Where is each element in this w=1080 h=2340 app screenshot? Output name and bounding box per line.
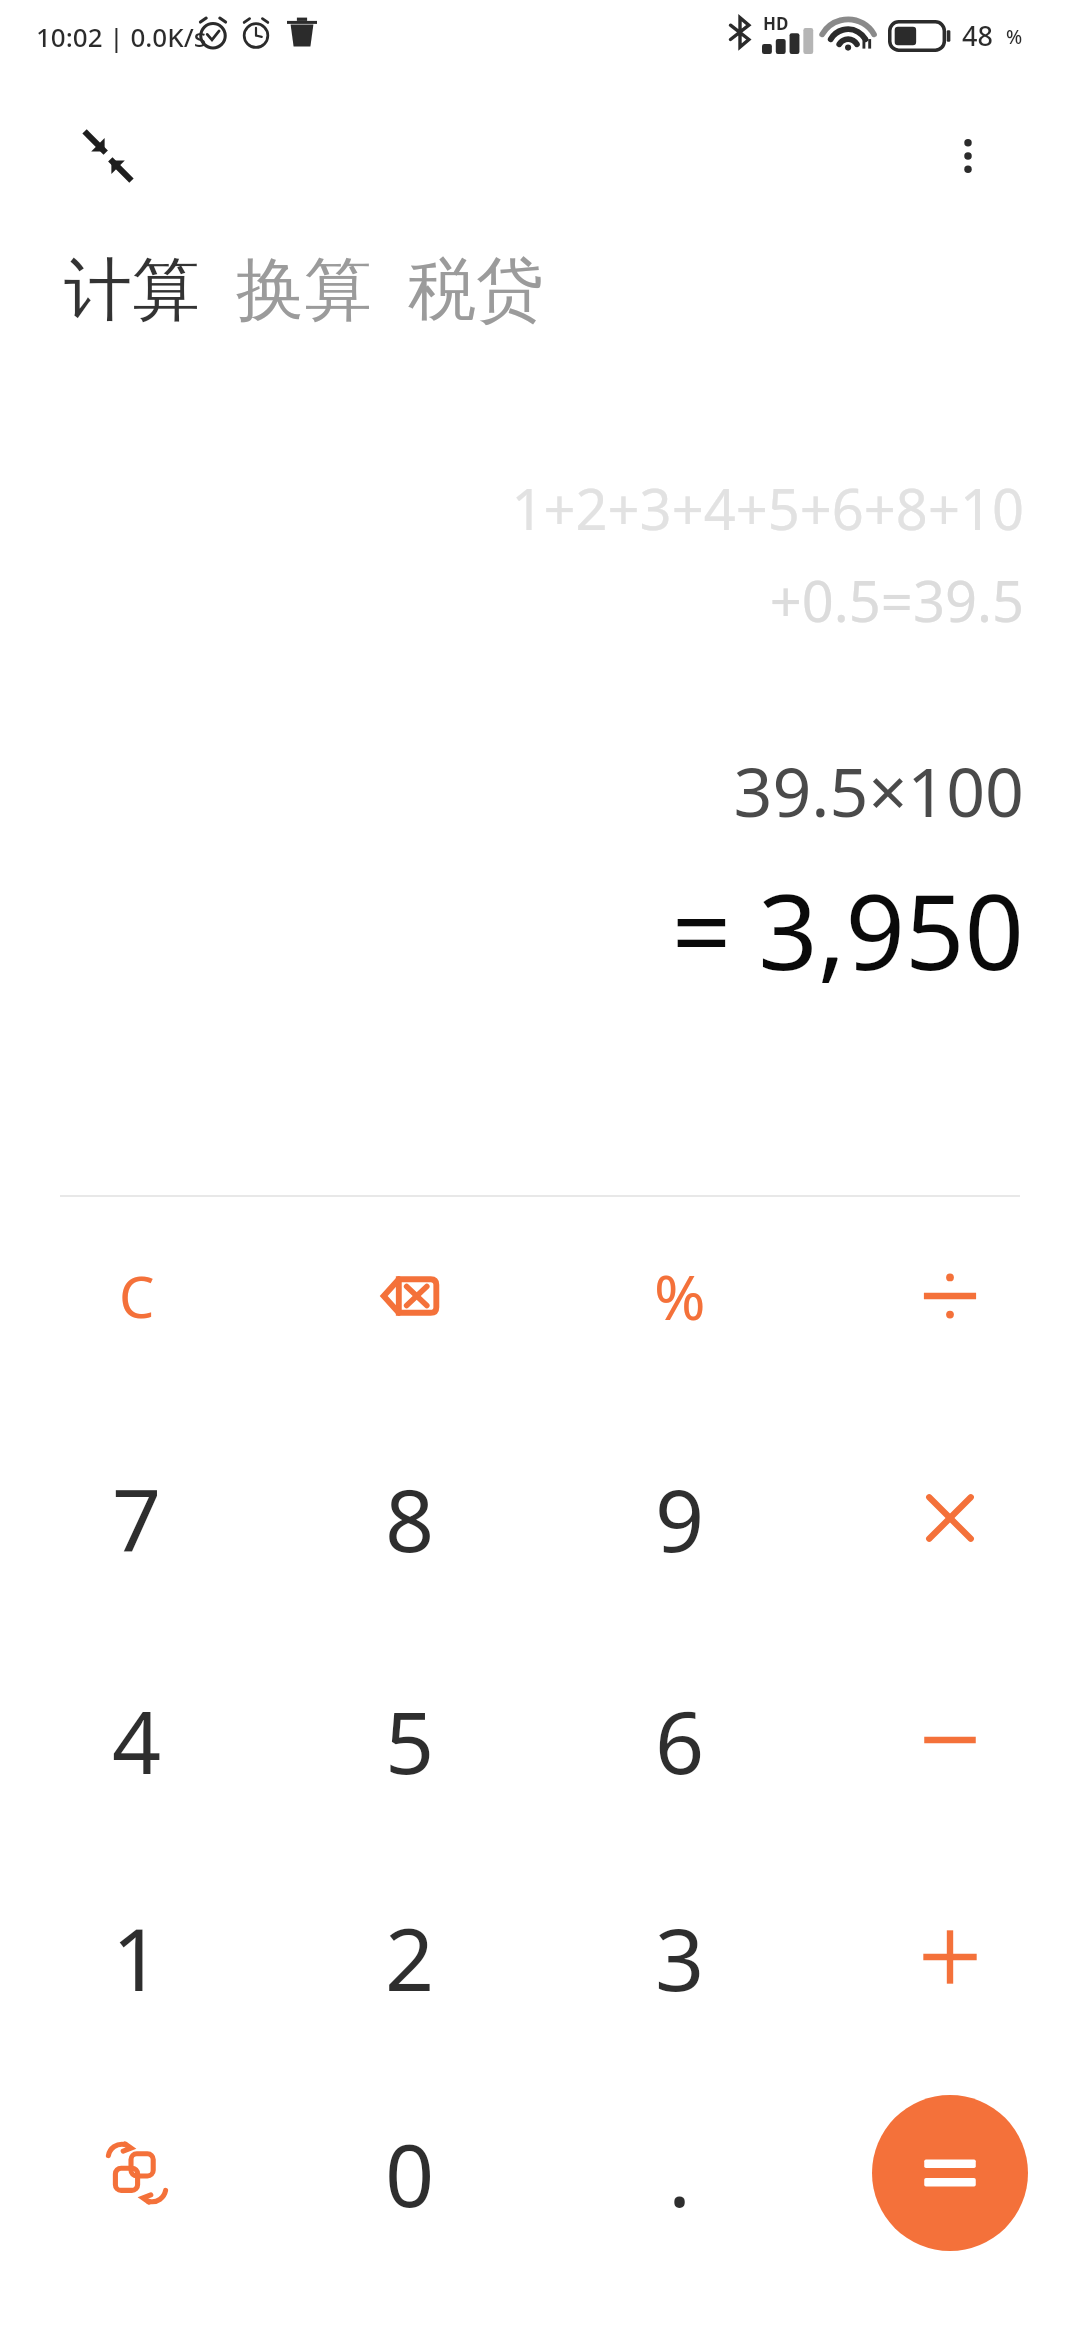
button[interactable]: 9 (560, 1418, 800, 1618)
button[interactable]: 2 (290, 1857, 530, 2057)
button[interactable]: More options (922, 110, 1014, 202)
staticText: 9 (655, 1460, 705, 1577)
button[interactable]: Minus (830, 1640, 1070, 1840)
button[interactable]: 计算 (64, 248, 218, 334)
button[interactable]: 换算 (218, 248, 390, 334)
button[interactable]: 7 (17, 1418, 257, 1618)
button[interactable]: 税贷 (390, 248, 544, 334)
staticText: 48 (962, 17, 993, 54)
button[interactable]: . (560, 2073, 800, 2273)
button[interactable]: Unit converter (17, 2073, 257, 2273)
staticText: . (668, 2115, 692, 2232)
staticText: +0.5=39.5 (769, 562, 1024, 638)
staticText: 3 (655, 1899, 705, 2016)
button[interactable]: 4 (17, 1640, 257, 1840)
button[interactable]: Collapse (62, 110, 154, 202)
staticText: 10:02 | 0.0K/s (36, 19, 207, 54)
button[interactable]: 0 (290, 2073, 530, 2273)
staticText: 39.5×100 (733, 744, 1024, 837)
staticText: % (654, 1254, 706, 1338)
button[interactable]: C (17, 1196, 257, 1396)
staticText: 换算 (236, 248, 372, 334)
button[interactable]: Plus (830, 1857, 1070, 2057)
staticText: C (119, 1258, 155, 1334)
staticText: 1 (112, 1899, 162, 2016)
button[interactable]: 6 (560, 1640, 800, 1840)
staticText: 5 (385, 1682, 435, 1799)
staticText: 0 (385, 2115, 435, 2232)
staticText: 2 (385, 1899, 435, 2016)
button[interactable]: 5 (290, 1640, 530, 1840)
staticText: = 3,950 (671, 859, 1024, 1001)
staticText: 计算 (64, 248, 200, 334)
staticText: 7 (112, 1460, 162, 1577)
staticText: 8 (385, 1460, 435, 1577)
staticText: HD (763, 12, 789, 35)
button[interactable]: 8 (290, 1418, 530, 1618)
button[interactable]: 3 (560, 1857, 800, 2057)
staticText: % (1006, 24, 1023, 50)
button[interactable]: Equals (872, 2095, 1028, 2251)
staticText: 税贷 (408, 248, 544, 334)
button[interactable]: Multiply (830, 1418, 1070, 1618)
button[interactable]: Divide (830, 1196, 1070, 1396)
staticText: 1+2+3+4+5+6+8+10 (511, 470, 1024, 546)
button[interactable]: 1 (17, 1857, 257, 2057)
button[interactable]: % (560, 1196, 800, 1396)
staticText: 6 (655, 1682, 705, 1799)
button[interactable]: Backspace (290, 1196, 530, 1396)
staticText: 4 (112, 1682, 162, 1799)
